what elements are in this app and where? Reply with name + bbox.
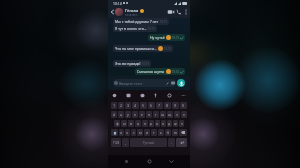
button[interactable]: ы <box>121 120 127 127</box>
button[interactable]: з <box>208 149 222 166</box>
button[interactable]: ю <box>172 129 178 136</box>
button[interactable]: Voice message <box>253 65 283 95</box>
button[interactable]: 3 <box>90 127 104 144</box>
button[interactable]: Enter <box>176 138 187 147</box>
button[interactable]: 3 <box>125 102 131 109</box>
button[interactable]: Camera <box>230 73 245 88</box>
button[interactable]: 1 <box>56 127 71 144</box>
button[interactable]: Что ты мне нравишься... <box>113 45 173 52</box>
button[interactable]: б <box>165 129 171 136</box>
button[interactable]: 8 <box>203 152 230 168</box>
button[interactable]: Attach <box>166 82 169 85</box>
button[interactable]: Back <box>168 158 175 165</box>
button[interactable]: Русский <box>130 138 167 147</box>
button[interactable]: 8 <box>184 127 200 144</box>
button[interactable]: 6 <box>145 127 162 144</box>
button[interactable]: м <box>137 129 143 136</box>
button[interactable]: 9 <box>203 127 220 144</box>
button[interactable]: Keyboard tool <box>224 106 236 118</box>
button[interactable]: Keyboard tool <box>126 106 138 118</box>
button[interactable]: в <box>128 120 134 127</box>
button[interactable]: Keyboard tool <box>161 118 180 137</box>
button[interactable]: Введите текст <box>9 65 249 95</box>
button[interactable]: Keyboard tool <box>167 93 172 98</box>
button[interactable]: , <box>122 138 129 147</box>
button[interactable]: 5 <box>112 152 139 168</box>
button[interactable]: ш <box>174 149 188 166</box>
button[interactable]: 7 <box>156 102 163 109</box>
button[interactable]: Смешная шутка <box>135 68 185 75</box>
button[interactable]: щ <box>191 149 205 166</box>
button[interactable]: ф <box>114 120 120 127</box>
button[interactable]: 9 <box>172 102 179 109</box>
button[interactable]: 7 <box>173 152 199 168</box>
button[interactable]: г <box>153 111 159 118</box>
button[interactable]: у <box>90 149 104 166</box>
button[interactable]: 3 <box>55 152 78 168</box>
button[interactable]: Введите текст <box>61 72 212 91</box>
button[interactable]: ш <box>160 111 166 118</box>
button[interactable]: Keyboard tool <box>215 118 234 137</box>
button[interactable]: Введите текст <box>113 79 176 87</box>
button[interactable]: More options <box>183 9 189 15</box>
button[interactable]: г <box>157 149 172 166</box>
button[interactable]: Это же правда! <box>9 0 154 19</box>
button[interactable]: 0 <box>180 102 187 109</box>
button[interactable]: Attach <box>211 76 222 88</box>
button[interactable]: ь <box>158 129 164 136</box>
button[interactable]: Recents <box>123 158 130 165</box>
button[interactable]: е <box>139 111 145 118</box>
button[interactable]: Keyboard tool <box>140 93 145 98</box>
button[interactable]: 1 <box>111 102 117 109</box>
button[interactable]: Мы с тобой дружим 7 лет <box>113 18 169 25</box>
button[interactable]: 5 <box>140 102 147 109</box>
button[interactable]: у <box>125 111 131 118</box>
button[interactable]: 8 <box>164 102 171 109</box>
button[interactable]: к <box>107 149 121 166</box>
button[interactable]: з <box>174 111 180 118</box>
button[interactable]: Keyboard tool <box>153 93 158 98</box>
button[interactable]: я <box>119 129 124 136</box>
button[interactable]: д <box>167 120 172 127</box>
button[interactable]: л <box>161 120 166 127</box>
button[interactable]: . <box>168 138 175 147</box>
button[interactable]: т <box>151 129 157 136</box>
button[interactable]: Voice message <box>177 79 185 87</box>
button[interactable]: Смешная шутка <box>114 46 234 62</box>
button[interactable]: н <box>140 149 155 166</box>
button[interactable]: Keyboard tool <box>157 106 169 118</box>
button[interactable]: ч <box>125 129 130 136</box>
button[interactable]: п <box>142 120 148 127</box>
button[interactable]: Смешная шутка <box>93 23 283 50</box>
button[interactable]: Keyboard tool <box>59 118 78 137</box>
button[interactable]: 2 <box>73 127 88 144</box>
button[interactable]: ц <box>73 149 88 166</box>
button[interactable]: 6 <box>142 152 169 168</box>
button[interactable]: Camera <box>200 77 210 86</box>
button[interactable]: 4 <box>107 127 124 144</box>
button[interactable]: Shift <box>111 129 118 136</box>
button[interactable]: х <box>181 111 187 118</box>
button[interactable]: 7 <box>164 127 181 144</box>
button[interactable]: Keyboard tool <box>112 93 117 98</box>
button[interactable]: Back <box>109 9 115 15</box>
button[interactable]: Что ты мне нравишься... <box>61 0 205 7</box>
button[interactable]: и <box>144 129 150 136</box>
button[interactable]: Keyboard tool <box>112 118 131 137</box>
button[interactable]: ц <box>118 111 124 118</box>
button[interactable]: 5 <box>126 127 143 144</box>
button[interactable]: Attach <box>188 79 196 86</box>
button[interactable]: Voice message <box>215 72 234 91</box>
button[interactable]: Keyboard tool <box>126 93 131 98</box>
button[interactable]: а <box>135 120 141 127</box>
button[interactable]: Call <box>175 8 183 16</box>
